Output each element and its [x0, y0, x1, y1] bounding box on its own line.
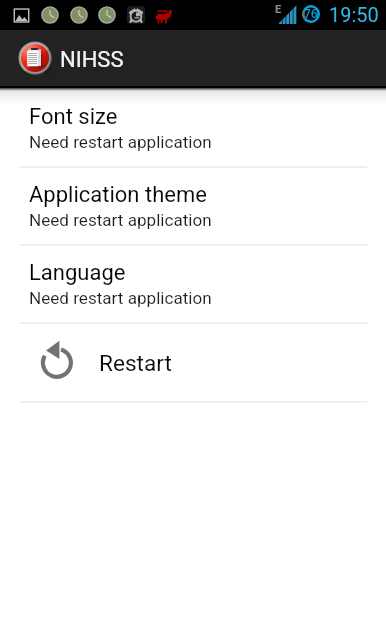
- button[interactable]: Application theme: [0, 168, 386, 244]
- staticText: Language: [29, 260, 126, 286]
- staticText: Application theme: [29, 182, 207, 208]
- button[interactable]: Restart: [0, 324, 386, 401]
- staticText: 76: [304, 7, 318, 21]
- button[interactable]: Font size: [0, 90, 386, 166]
- staticText: Font size: [29, 104, 118, 130]
- staticText: 19:50: [329, 3, 379, 26]
- staticText: Need restart application: [29, 288, 212, 308]
- button[interactable]: NIHSS: [0, 30, 138, 86]
- staticText: Need restart application: [29, 210, 212, 230]
- staticText: Restart: [99, 350, 172, 376]
- staticText: E: [275, 3, 282, 16]
- staticText: NIHSS: [60, 47, 124, 73]
- staticText: Need restart application: [29, 132, 212, 152]
- button[interactable]: Language: [0, 246, 386, 322]
